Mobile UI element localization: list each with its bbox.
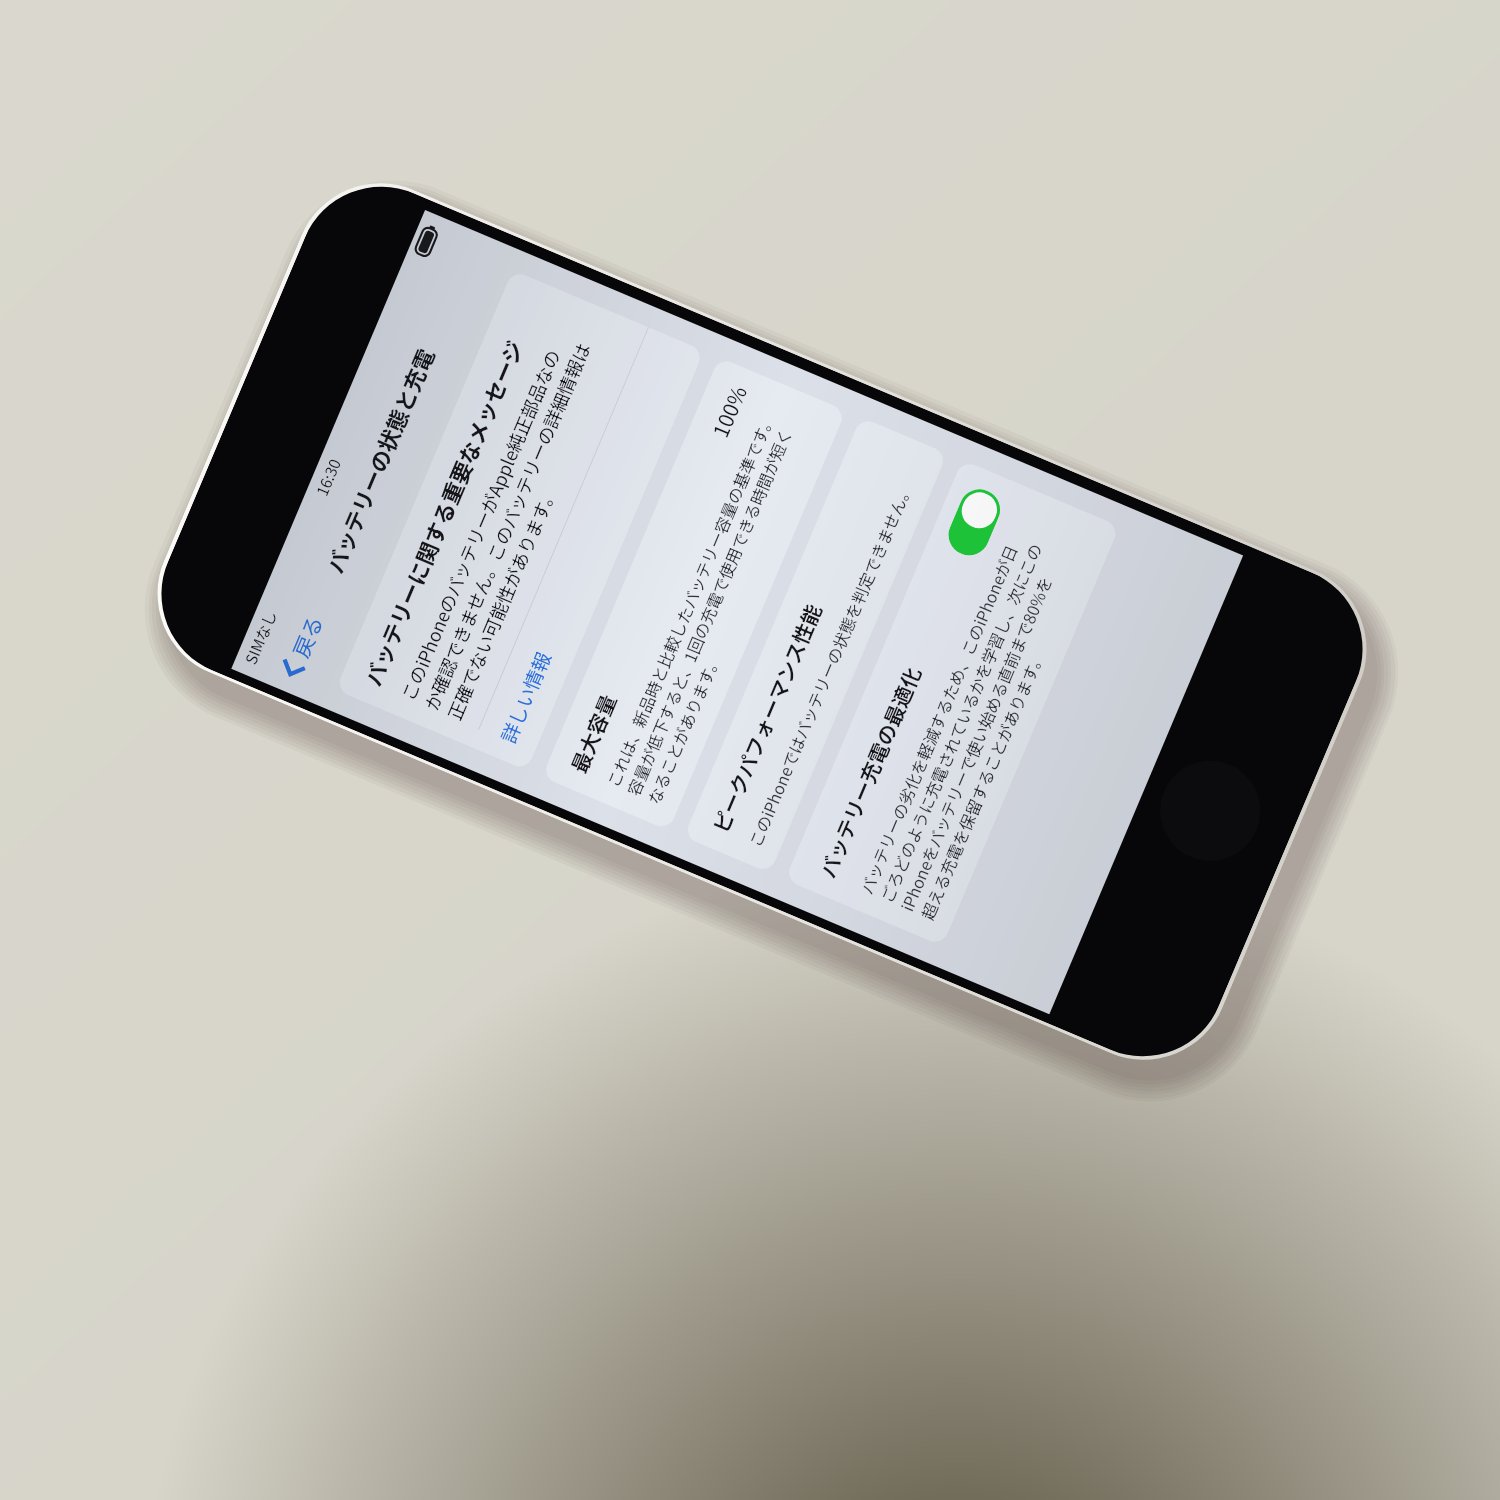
staticText: 100% — [704, 380, 753, 442]
button[interactable]: 戻る — [269, 603, 336, 688]
staticText: 16:30 — [310, 454, 345, 499]
button[interactable]: バッテリー充電の最適化 — [942, 483, 1006, 562]
staticText: バッテリーに関する重要なメッセージ — [356, 335, 531, 691]
staticText: 詳しい情報 — [494, 647, 557, 747]
button[interactable]: 詳しい情報 — [472, 327, 704, 771]
staticText: 戻る — [284, 610, 329, 662]
staticText: バッテリーの状態と充電 — [318, 343, 442, 578]
staticText: このiPhoneではバッテリーの状態を判定できません。 — [742, 479, 917, 850]
staticText: ピークパフォーマンス性能 — [705, 599, 828, 837]
staticText: バッテリーの劣化を軽減するため、このiPhoneが日 ごろどのように充電されてい… — [854, 531, 1087, 923]
staticText: これは、新品時と比較したバッテリー容量の基準です。 容量が低下すると、1回の充電… — [601, 409, 819, 807]
staticText: SIMなし — [239, 606, 281, 667]
staticText: バッテリー充電の最適化 — [812, 661, 928, 882]
staticText: 最大容量 — [563, 689, 623, 777]
staticText: このiPhoneのバッテリーがApple純正部品なの か確認できません。このバッ… — [394, 328, 619, 724]
